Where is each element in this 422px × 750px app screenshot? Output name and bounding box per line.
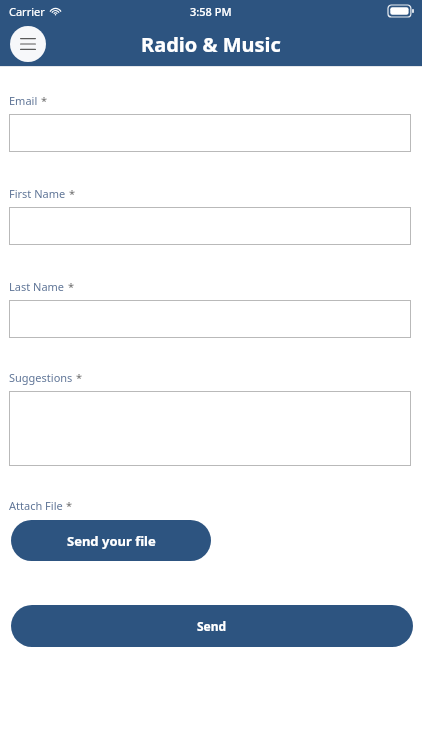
button[interactable]: Send	[11, 605, 413, 647]
staticText: *	[69, 186, 76, 201]
staticText: 3:58 PM	[190, 4, 232, 19]
staticText: Email	[9, 93, 38, 108]
button[interactable]	[9, 207, 411, 245]
button[interactable]: Send your file	[11, 520, 211, 561]
staticText: Carrier	[9, 4, 45, 19]
button[interactable]	[9, 114, 411, 152]
staticText: *	[66, 498, 73, 513]
button[interactable]	[9, 391, 411, 466]
staticText: *	[41, 93, 48, 108]
staticText: Send your file	[67, 532, 156, 550]
staticText: Send	[197, 618, 227, 634]
button[interactable]	[9, 300, 411, 338]
staticText: First Name	[9, 186, 66, 201]
staticText: *	[76, 370, 83, 385]
staticText: Last Name	[9, 279, 65, 294]
button[interactable]: Open navigation menu	[10, 26, 46, 62]
staticText: Suggestions	[9, 370, 73, 385]
staticText: *	[68, 279, 75, 294]
staticText: Radio & Music	[141, 31, 281, 58]
staticText: Attach File	[9, 498, 63, 513]
